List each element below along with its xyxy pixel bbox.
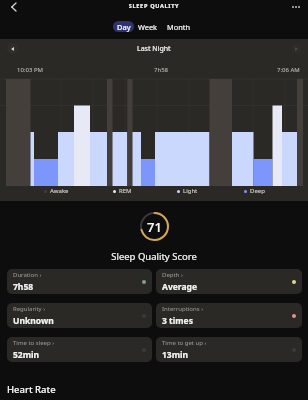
staticText: Heart Rate (7, 383, 56, 396)
staticText: Week (138, 22, 158, 32)
staticText: Duration › (13, 271, 42, 279)
button[interactable]: Day (113, 21, 134, 32)
staticText: 7:06 AM (277, 66, 300, 74)
staticText: Time to sleep › (13, 339, 55, 347)
staticText: Unknown (13, 315, 54, 327)
staticText: Interruptions › (162, 305, 203, 313)
button[interactable]: Month (162, 21, 195, 32)
staticText: REM (119, 187, 132, 195)
staticText: Awake (50, 187, 69, 195)
staticText: 7h58 (154, 66, 169, 74)
staticText: 10:03 PM (17, 66, 43, 74)
staticText: Depth › (162, 271, 183, 279)
button[interactable]: Time to sleep › (7, 337, 152, 362)
button[interactable]: Duration › (7, 269, 152, 294)
staticText: 52min (13, 349, 40, 361)
staticText: 13min (162, 349, 189, 361)
staticText: Average (162, 281, 197, 293)
button[interactable]: Depth › (156, 269, 302, 294)
staticText: Light (183, 187, 198, 195)
staticText: 7h58 (13, 281, 34, 293)
staticText: 71 (147, 218, 162, 236)
staticText: Day (117, 22, 131, 32)
button[interactable]: Next day (291, 43, 302, 54)
staticText: Regularity › (13, 305, 46, 313)
button[interactable]: Previous day (7, 43, 18, 54)
button[interactable]: More options (287, 0, 304, 14)
button[interactable]: Week (134, 21, 162, 32)
staticText: Month (167, 22, 190, 32)
staticText: Sleep Quality Score (0, 250, 308, 263)
button[interactable]: Back (4, 0, 22, 14)
staticText: Last Night (137, 44, 171, 54)
staticText: Time to get up › (162, 339, 207, 347)
staticText: 3 times (162, 315, 193, 327)
button[interactable]: Regularity › (7, 303, 152, 328)
button[interactable]: Interruptions › (156, 303, 302, 328)
button[interactable]: Time to get up › (156, 337, 302, 362)
staticText: SLEEP QUALITY (0, 2, 308, 10)
staticText: Deep (250, 187, 265, 195)
